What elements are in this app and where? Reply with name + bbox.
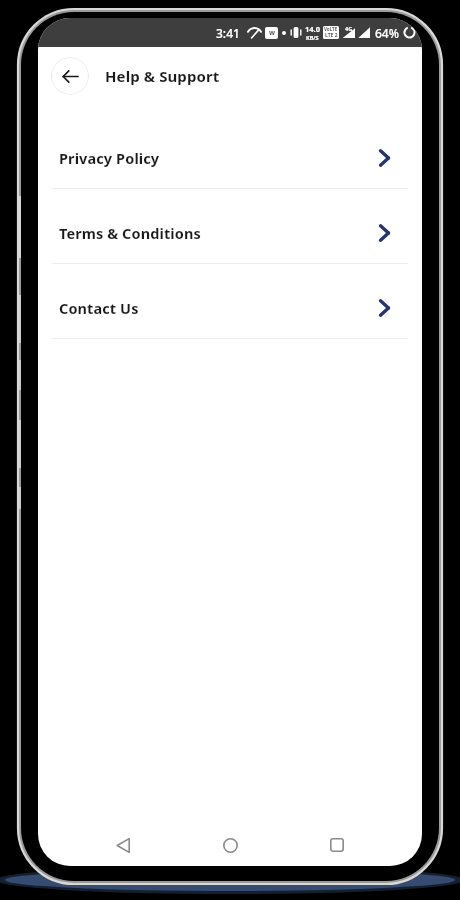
staticText: 14.0 <box>305 24 320 34</box>
staticText: 64% <box>375 25 399 41</box>
button[interactable]: Recent apps <box>315 826 359 864</box>
staticText: w <box>269 28 275 38</box>
staticText: LTE 2 <box>325 32 338 39</box>
staticText: 4G <box>345 25 353 32</box>
button[interactable]: Back <box>101 826 145 864</box>
staticText: Contact Us <box>59 298 139 318</box>
staticText: Help & Support <box>105 66 220 86</box>
button[interactable]: Home <box>208 826 252 864</box>
button[interactable]: Terms & Conditions <box>38 203 422 278</box>
staticText: VoLTE <box>324 26 338 32</box>
button[interactable]: Back <box>51 57 89 95</box>
staticText: Privacy Policy <box>59 148 160 168</box>
staticText: Terms & Conditions <box>59 223 201 243</box>
staticText: 3:41 <box>216 25 240 41</box>
staticText: KB/S <box>306 34 319 41</box>
button[interactable]: Privacy Policy <box>38 128 422 203</box>
button[interactable]: Contact Us <box>38 278 422 353</box>
